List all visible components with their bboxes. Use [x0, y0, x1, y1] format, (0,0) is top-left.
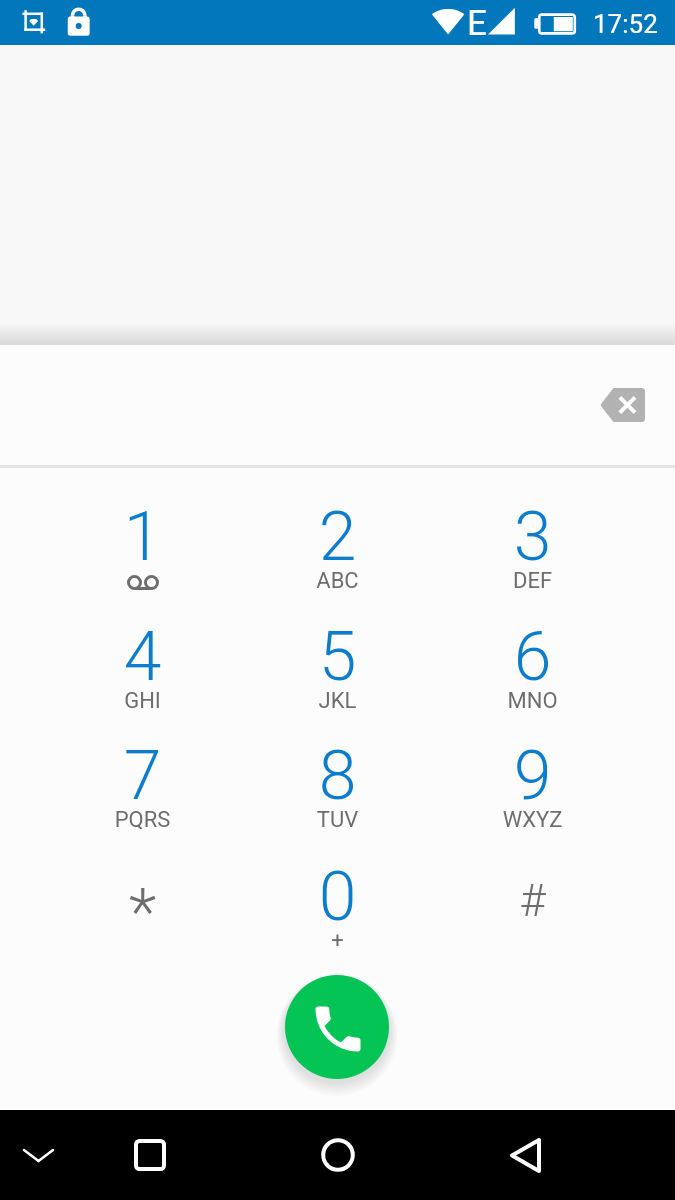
staticText: 4: [45, 617, 240, 697]
staticText: 3: [435, 497, 630, 577]
button[interactable]: 0: [240, 839, 435, 957]
button[interactable]: 5: [240, 599, 435, 717]
button[interactable]: Backspace: [588, 376, 657, 433]
staticText: 1: [45, 497, 240, 577]
staticText: 7: [45, 736, 240, 816]
staticText: 17:52: [593, 9, 658, 39]
staticText: +: [240, 928, 435, 954]
staticText: 8: [240, 736, 435, 816]
button[interactable]: 7: [45, 718, 240, 836]
staticText: 9: [435, 736, 630, 816]
button[interactable]: 4: [45, 599, 240, 717]
button[interactable]: #: [435, 839, 630, 957]
button[interactable]: 6: [435, 599, 630, 717]
staticText: WXYZ: [435, 807, 630, 833]
button[interactable]: *: [45, 839, 240, 957]
button[interactable]: Back: [495, 1125, 555, 1185]
button[interactable]: Hide keyboard: [8, 1125, 68, 1185]
staticText: 5: [240, 617, 435, 697]
staticText: *: [45, 875, 240, 950]
staticText: TUV: [240, 807, 435, 833]
staticText: GHI: [45, 688, 240, 714]
staticText: MNO: [435, 688, 630, 714]
staticText: JKL: [240, 688, 435, 714]
button[interactable]: Recent apps: [120, 1125, 180, 1185]
button[interactable]: 1: [45, 479, 240, 597]
staticText: #: [435, 874, 630, 927]
staticText: ABC: [240, 568, 435, 594]
staticText: 2: [240, 497, 435, 577]
button[interactable]: Home: [308, 1125, 368, 1185]
staticText: PQRS: [45, 807, 240, 833]
staticText: 0: [240, 857, 435, 937]
button[interactable]: 9: [435, 718, 630, 836]
staticText: E: [467, 3, 487, 44]
staticText: 6: [435, 617, 630, 697]
staticText: DEF: [435, 568, 630, 594]
button[interactable]: 8: [240, 718, 435, 836]
button[interactable]: 2: [240, 479, 435, 597]
button[interactable]: 3: [435, 479, 630, 597]
button[interactable]: Call: [285, 975, 389, 1079]
